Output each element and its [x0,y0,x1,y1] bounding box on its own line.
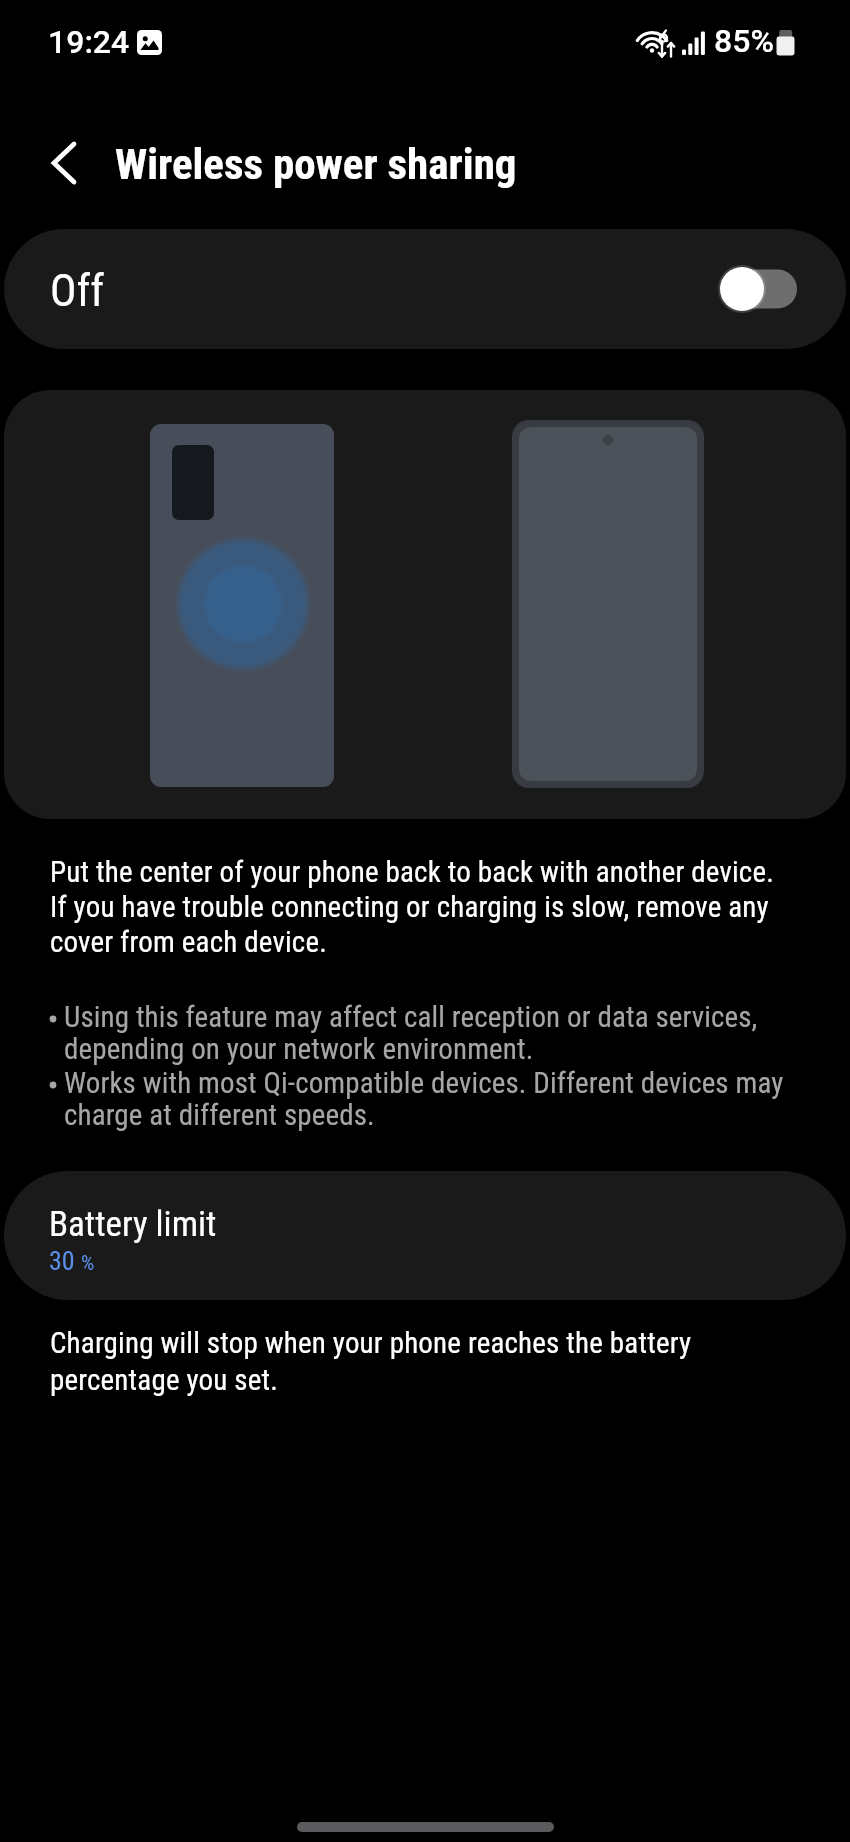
staticText: Wireless power sharing [115,139,517,189]
staticText: % [81,1252,95,1275]
staticText: 85% [714,22,774,60]
staticText: Using this feature may affect call recep… [64,1002,790,1066]
staticText: Works with most Qi-compatible devices. D… [64,1068,790,1132]
staticText: Battery limit [49,1207,217,1243]
staticText: Charging will stop when your phone reach… [50,1324,750,1398]
button[interactable]: Back [14,113,114,213]
button[interactable]: Off [4,229,846,349]
staticText: Put the center of your phone back to bac… [50,854,784,959]
staticText: 19:24 [48,23,130,61]
button[interactable]: Battery limit [4,1171,846,1300]
staticText: Off [50,265,105,317]
staticText: 30 [49,1248,75,1276]
